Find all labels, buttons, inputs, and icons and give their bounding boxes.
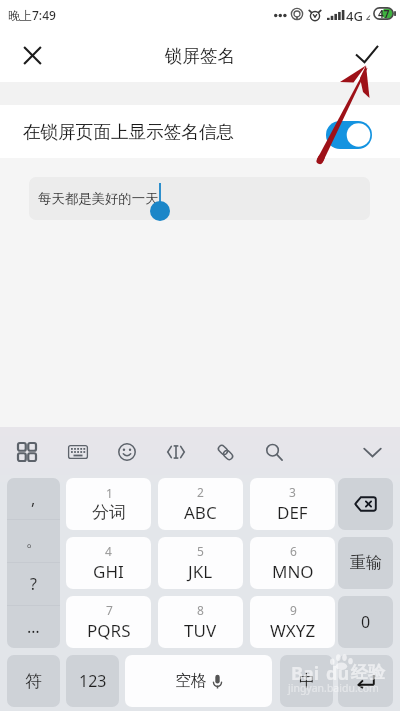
staticText: 7 xyxy=(106,602,113,618)
button[interactable]: 3 xyxy=(250,478,335,530)
staticText: 重输 xyxy=(350,553,382,573)
staticText: 在锁屏页面上显示签名信息 xyxy=(23,121,235,143)
button[interactable]: Close xyxy=(12,36,52,76)
staticText: jingyan.baidu.com xyxy=(288,681,379,695)
staticText: 每天都是美好的一天 xyxy=(38,190,159,207)
staticText: 。 xyxy=(26,531,42,551)
button[interactable]: 符 xyxy=(7,655,60,707)
button[interactable]: Emoji xyxy=(110,435,144,469)
button[interactable]: 2 xyxy=(158,478,243,530)
staticText: 符 xyxy=(25,671,42,692)
button[interactable]: 每天都是美好的一天 xyxy=(29,177,370,220)
button[interactable]: 1 xyxy=(66,478,151,530)
button[interactable]: Apps xyxy=(10,435,44,469)
staticText: GHI xyxy=(93,560,124,583)
staticText: TUV xyxy=(184,619,217,642)
staticText: ABC xyxy=(184,501,217,524)
staticText: 123 xyxy=(79,670,107,692)
staticText: DEF xyxy=(277,501,308,524)
button[interactable]: 9 xyxy=(250,596,335,648)
staticText: 8 xyxy=(197,602,204,618)
staticText: 晚上7:49 xyxy=(8,7,56,23)
staticText: 4G xyxy=(346,7,363,25)
staticText: 分词 xyxy=(92,502,126,523)
staticText: 0 xyxy=(361,611,371,633)
staticText: 经验 xyxy=(351,662,385,683)
staticText: 空格 xyxy=(175,671,207,691)
button[interactable]: Clipboard xyxy=(208,435,242,469)
staticText: WXYZ xyxy=(270,619,316,642)
button[interactable]: 4 xyxy=(66,537,151,589)
button[interactable]: 。 xyxy=(7,520,60,562)
staticText: 4 xyxy=(105,543,112,559)
staticText: 5 xyxy=(197,543,204,559)
staticText: ? xyxy=(30,573,37,595)
staticText: JKL xyxy=(188,560,213,583)
staticText: MNO xyxy=(272,560,314,583)
staticText: 6 xyxy=(290,543,297,559)
button[interactable]: Edit text xyxy=(159,435,193,469)
button[interactable]: Confirm xyxy=(347,36,387,76)
button[interactable]: ? xyxy=(7,563,60,605)
button[interactable]: 中 xyxy=(280,655,333,707)
button[interactable]: 123 xyxy=(66,655,119,707)
button[interactable]: Backspace xyxy=(338,478,393,530)
staticText: 9 xyxy=(290,602,297,618)
button[interactable]: 7 xyxy=(66,596,151,648)
staticText: 47 xyxy=(378,7,390,20)
button[interactable]: 8 xyxy=(158,596,243,648)
button[interactable]: 0 xyxy=(338,596,393,648)
button[interactable]: 6 xyxy=(250,537,335,589)
staticText: 锁屏签名 xyxy=(165,45,235,67)
button[interactable]: Enter xyxy=(338,655,393,707)
staticText: PQRS xyxy=(87,619,131,642)
staticText: … xyxy=(27,616,40,638)
button[interactable]: Hide keyboard xyxy=(355,435,389,469)
button[interactable]: Show signature on lock screen xyxy=(326,121,372,149)
button[interactable]: 重输 xyxy=(338,537,393,589)
staticText: 3 xyxy=(289,484,296,500)
button[interactable]: Keyboard layout xyxy=(61,435,95,469)
staticText: , xyxy=(31,488,36,510)
button[interactable]: 空格 xyxy=(125,655,272,707)
button[interactable]: 5 xyxy=(158,537,243,589)
staticText: Bai xyxy=(291,661,320,686)
button[interactable]: … xyxy=(7,606,60,648)
staticText: du xyxy=(326,661,350,686)
staticText: 1 xyxy=(106,485,113,501)
button[interactable]: Search xyxy=(257,435,291,469)
staticText: 中 xyxy=(299,671,315,691)
button[interactable]: , xyxy=(7,478,60,519)
staticText: 2 xyxy=(197,484,204,500)
